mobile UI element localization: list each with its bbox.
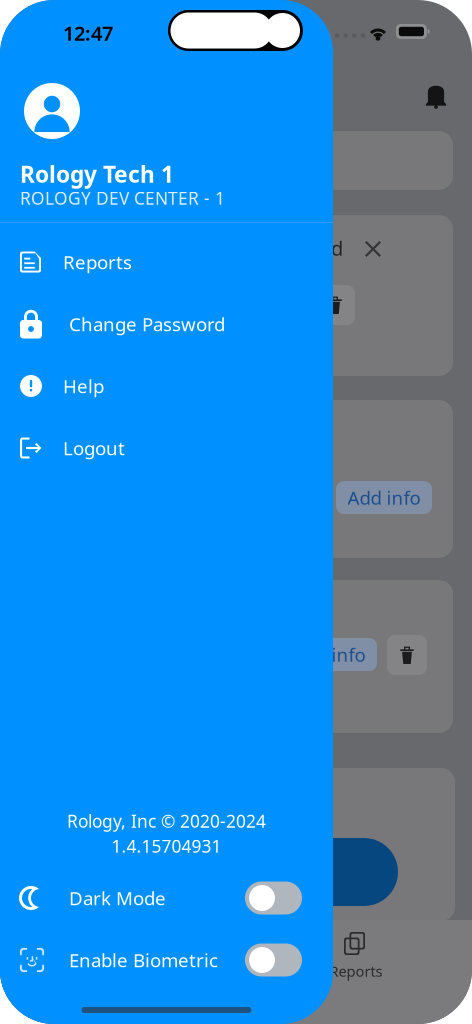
- staticText: Change Password: [69, 312, 225, 336]
- staticText: Paused: [275, 235, 343, 261]
- staticText: Help: [63, 374, 104, 398]
- staticText: Reports: [63, 250, 132, 274]
- staticText: Reports: [329, 961, 382, 981]
- button[interactable]: Logout: [0, 417, 333, 479]
- button[interactable]: Dark Mode: [0, 867, 333, 929]
- staticText: Add info: [347, 485, 420, 510]
- button[interactable]: Enable Biometric: [0, 929, 333, 991]
- staticText: 12:47: [63, 20, 113, 46]
- button[interactable]: Change Password: [0, 293, 333, 355]
- staticText: Add info: [292, 642, 365, 667]
- button[interactable]: Reports: [0, 231, 333, 293]
- staticText: ROLOGY DEV CENTER - 1: [20, 186, 225, 209]
- staticText: Enable Biometric: [69, 948, 218, 972]
- staticText: Rology Tech 1: [20, 159, 174, 189]
- button[interactable]: Help: [0, 355, 333, 417]
- staticText: Dark Mode: [69, 886, 166, 910]
- staticText: 1.4.15704931: [111, 834, 221, 857]
- staticText: Rology, Inc © 2020-2024: [67, 809, 266, 832]
- staticText: Logout: [63, 436, 125, 460]
